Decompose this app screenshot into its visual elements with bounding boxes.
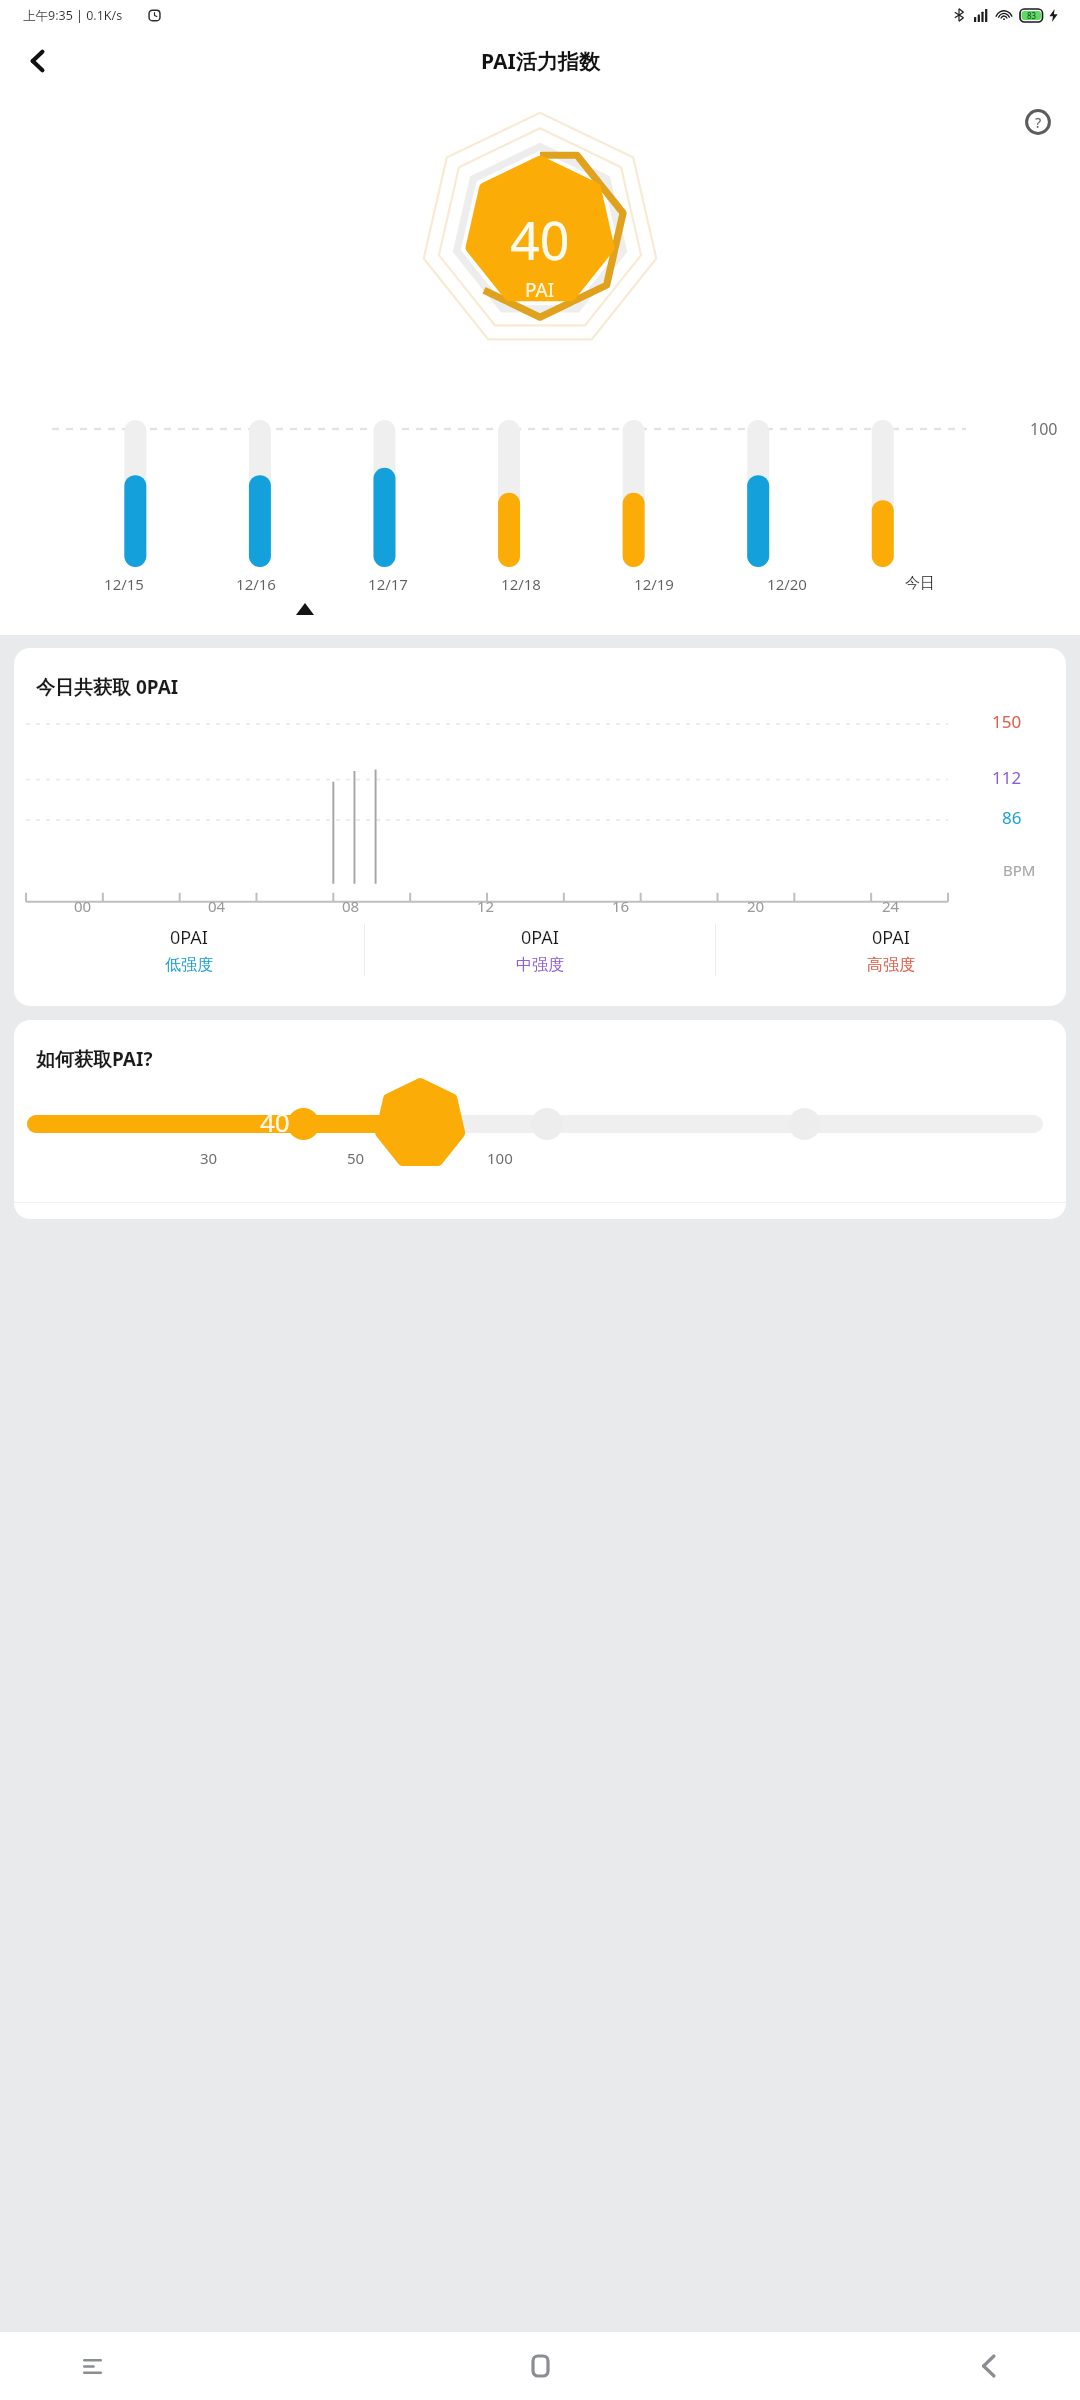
staticText: 12/15	[104, 574, 144, 594]
staticText: 50	[347, 1148, 365, 1168]
staticText: PAI	[525, 277, 555, 303]
staticText: 12/20	[767, 574, 807, 594]
staticText: 今日共获取 0PAI	[36, 674, 179, 700]
staticText: 150	[992, 710, 1022, 733]
staticText: ?	[1035, 113, 1042, 132]
button[interactable]: PAI score 40	[420, 112, 660, 352]
staticText: 04	[208, 896, 226, 916]
staticText: 上午9:35 | 0.1K/s	[23, 7, 123, 24]
staticText: 100	[1030, 418, 1058, 440]
staticText: 中强度	[516, 955, 564, 975]
staticText: 24	[882, 896, 900, 916]
staticText: BPM	[1003, 860, 1036, 880]
staticText: 40	[510, 204, 570, 275]
button[interactable]: 今日共获取 0PAI	[14, 648, 1066, 1006]
staticText: 0PAI	[521, 925, 559, 950]
staticText: 20	[747, 896, 765, 916]
staticText: 00	[74, 896, 92, 916]
staticText: 12/17	[368, 574, 408, 594]
staticText: 86	[1002, 806, 1022, 829]
staticText: 如何获取PAI?	[36, 1046, 153, 1072]
staticText: 0PAI	[170, 925, 208, 950]
button[interactable]: Recent apps	[60, 2334, 124, 2398]
staticText: 112	[992, 766, 1022, 789]
staticText: 12/16	[236, 574, 276, 594]
staticText: 12/18	[501, 574, 541, 594]
staticText: 16	[612, 896, 630, 916]
staticText: 12	[477, 896, 495, 916]
staticText: 0PAI	[872, 925, 910, 950]
staticText: PAI活力指数	[481, 47, 600, 76]
staticText: 40	[260, 1104, 290, 1139]
staticText: 30	[200, 1148, 218, 1168]
staticText: 低强度	[165, 955, 213, 975]
staticText: 08	[342, 896, 360, 916]
staticText: 高强度	[867, 955, 915, 975]
staticText: 12/19	[634, 574, 674, 594]
staticText: 今日	[905, 574, 935, 593]
staticText: 100	[487, 1148, 513, 1168]
button[interactable]: Help	[1016, 100, 1060, 144]
button[interactable]: Back	[956, 2334, 1020, 2398]
button[interactable]: 如何获取PAI?	[14, 1020, 1066, 1219]
button[interactable]: Home	[508, 2334, 572, 2398]
button[interactable]: Back	[12, 35, 64, 87]
staticText: 83	[1027, 10, 1037, 21]
